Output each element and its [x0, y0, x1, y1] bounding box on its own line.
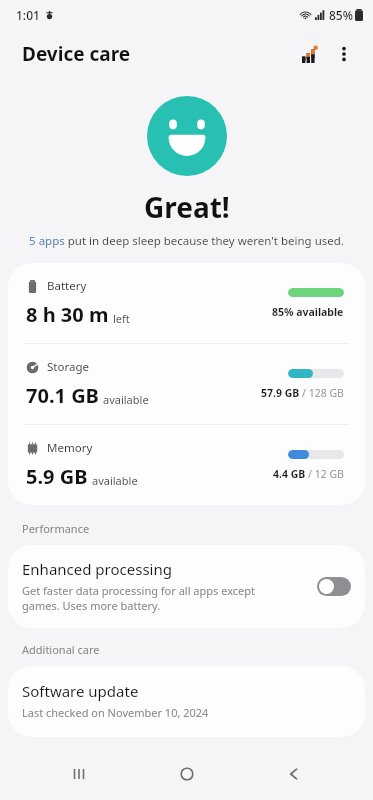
button[interactable]: Usage statistics	[293, 37, 327, 71]
staticText: 5 apps put in deep sleep because they we…	[29, 233, 344, 249]
staticText: Enhanced processing	[22, 559, 172, 579]
staticText: 4.4 GB / 12 GB	[273, 467, 344, 481]
button[interactable]: Enhanced processing toggle	[317, 577, 351, 596]
button[interactable]: Battery	[8, 263, 365, 343]
staticText: Software update	[22, 681, 139, 701]
staticText: 8 h 30 m	[26, 301, 109, 328]
staticText: available	[103, 392, 149, 407]
staticText: 70.1 GB	[26, 382, 99, 409]
staticText: Battery	[47, 278, 87, 294]
button[interactable]: Home	[159, 748, 215, 800]
staticText: available	[92, 473, 138, 488]
staticText: Get faster data processing for all apps …	[22, 583, 293, 613]
button[interactable]: More options	[327, 37, 361, 71]
button[interactable]: Software update	[8, 666, 365, 737]
staticText: Performance	[22, 521, 90, 536]
staticText: Additional care	[22, 642, 100, 657]
button[interactable]: Enhanced processing	[8, 545, 365, 628]
staticText: Storage	[47, 359, 89, 375]
button[interactable]: Recents	[51, 748, 107, 800]
staticText: Last checked on November 10, 2024	[22, 705, 209, 720]
staticText: Memory	[47, 440, 93, 456]
staticText: 5.9 GB	[26, 463, 88, 490]
staticText: left	[113, 311, 130, 326]
staticText: Great!	[144, 188, 230, 226]
button[interactable]: Storage	[8, 344, 365, 424]
staticText: 1:01	[16, 7, 40, 23]
staticText: 85% available	[272, 305, 344, 319]
staticText: 85%	[329, 7, 353, 23]
button[interactable]: Memory	[8, 425, 365, 505]
staticText: Device care	[22, 41, 131, 67]
staticText: 57.9 GB / 128 GB	[261, 386, 344, 400]
button[interactable]: Back	[266, 748, 322, 800]
